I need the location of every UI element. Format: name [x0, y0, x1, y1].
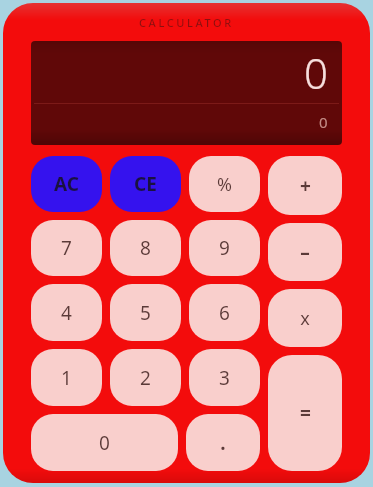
- staticText: 1: [61, 365, 72, 391]
- button[interactable]: AC: [31, 156, 102, 212]
- staticText: %: [217, 172, 232, 197]
- button[interactable]: +: [268, 156, 342, 215]
- staticText: 8: [140, 235, 151, 261]
- button[interactable]: x: [268, 289, 342, 347]
- button[interactable]: 5: [110, 284, 181, 341]
- button[interactable]: 0: [31, 414, 178, 471]
- button[interactable]: 1: [31, 349, 102, 406]
- staticText: .: [220, 430, 226, 456]
- button[interactable]: 8: [110, 220, 181, 276]
- staticText: 7: [61, 235, 72, 261]
- staticText: 3: [219, 365, 230, 391]
- button[interactable]: –: [268, 223, 342, 281]
- staticText: –: [300, 239, 310, 265]
- staticText: 2: [140, 365, 151, 391]
- button[interactable]: .: [186, 414, 260, 471]
- button[interactable]: 6: [189, 284, 260, 341]
- staticText: 5: [140, 300, 151, 326]
- staticText: 0: [304, 44, 328, 101]
- button[interactable]: %: [189, 156, 260, 212]
- button[interactable]: 2: [110, 349, 181, 406]
- staticText: 0: [99, 430, 110, 456]
- staticText: x: [300, 306, 310, 331]
- staticText: 4: [61, 300, 72, 326]
- button[interactable]: 3: [189, 349, 260, 406]
- staticText: +: [300, 173, 311, 199]
- staticText: =: [300, 400, 311, 426]
- staticText: 6: [219, 300, 230, 326]
- button[interactable]: Equals: [268, 355, 342, 471]
- button[interactable]: 7: [31, 220, 102, 276]
- button[interactable]: CE: [110, 156, 181, 212]
- staticText: CALCULATOR: [139, 15, 234, 30]
- button[interactable]: 4: [31, 284, 102, 341]
- staticText: AC: [54, 171, 79, 197]
- button[interactable]: 9: [189, 220, 260, 276]
- staticText: CE: [134, 171, 157, 197]
- staticText: 0: [319, 112, 328, 132]
- staticText: 9: [219, 235, 230, 261]
